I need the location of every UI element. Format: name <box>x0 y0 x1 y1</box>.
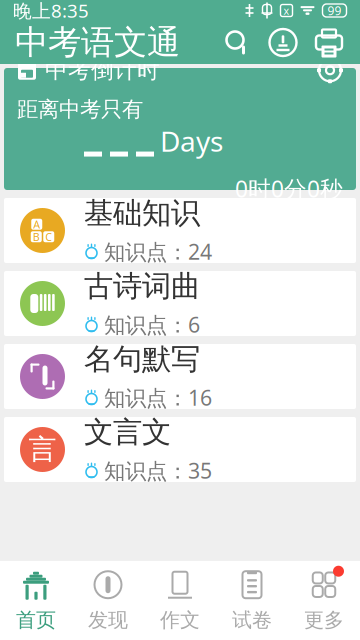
button[interactable]: 试卷 <box>216 560 288 640</box>
staticText: 99 <box>327 2 341 18</box>
staticText: 中考倒计时 <box>45 56 160 84</box>
button[interactable]: 作文 <box>144 560 216 640</box>
staticText: B <box>33 230 40 244</box>
button[interactable]: 更多 <box>288 560 360 640</box>
staticText: 知识点：24 <box>104 237 212 266</box>
button[interactable]: 搜索 <box>214 19 260 65</box>
staticText: C <box>45 230 52 244</box>
button[interactable]: 首页 <box>0 560 72 640</box>
staticText: A <box>33 217 40 231</box>
staticText: 首页 <box>16 608 56 632</box>
staticText: 文言文 <box>84 414 171 450</box>
staticText: 基础知识 <box>84 195 200 231</box>
button[interactable]: 倒计时设置 <box>317 57 343 83</box>
staticText: 距离中考只有 <box>17 96 143 122</box>
staticText: x <box>283 3 289 18</box>
button[interactable]: 下载 <box>260 19 306 65</box>
staticText: 中考语文通 <box>15 22 180 63</box>
staticText: 发现 <box>88 608 128 632</box>
button[interactable]: A <box>0 190 360 263</box>
button[interactable]: 发现 <box>72 560 144 640</box>
staticText: 言 <box>28 432 56 467</box>
button[interactable]: 打印 <box>306 19 352 65</box>
staticText: 0时0分0秒 <box>235 174 343 204</box>
staticText: 作文 <box>160 608 200 632</box>
staticText: 名句默写 <box>84 341 200 377</box>
staticText: 古诗词曲 <box>84 268 200 304</box>
staticText: 知识点：16 <box>104 383 212 412</box>
button[interactable]: 古诗词曲 <box>0 263 360 336</box>
staticText: 知识点：35 <box>104 456 212 485</box>
button[interactable]: 名句默写 <box>0 336 360 409</box>
staticText: 晚上8:35 <box>13 0 89 23</box>
staticText: Days <box>160 122 223 160</box>
staticText: 试卷 <box>232 608 272 632</box>
staticText: 更多 <box>304 608 344 632</box>
button[interactable]: 言 <box>0 409 360 482</box>
staticText: 知识点：6 <box>104 310 200 339</box>
